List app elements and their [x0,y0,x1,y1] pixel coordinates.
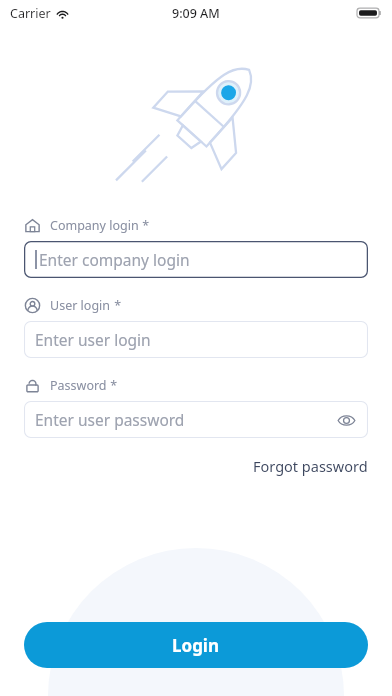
staticText: Login [172,634,220,657]
staticText: * [111,297,122,314]
staticText: Enter user password [35,409,185,430]
staticText: 9:09 AM [172,5,220,22]
staticText: Enter company login [39,249,190,270]
staticText: Password [50,377,107,394]
button[interactable]: Enter user password [24,401,368,438]
staticText: Company login [50,217,139,234]
staticText: Enter user login [35,329,151,350]
staticText: Carrier [10,5,51,22]
button[interactable]: Enter company login [24,241,368,278]
button[interactable]: Enter user login [24,321,368,358]
button[interactable]: Forgot password [229,450,392,482]
staticText: Forgot password [253,456,368,476]
button[interactable]: Login [24,622,368,668]
staticText: * [139,217,150,234]
button[interactable]: Show password [335,409,357,431]
staticText: User login [50,297,111,314]
staticText: * [107,377,118,394]
